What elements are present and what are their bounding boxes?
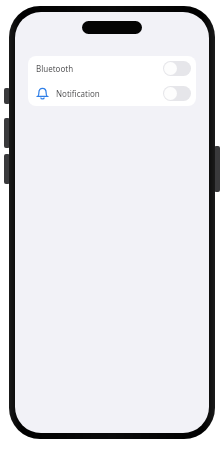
other: Notification (36, 87, 49, 100)
button[interactable]: Bluetooth (28, 56, 196, 81)
staticText: Bluetooth (36, 63, 74, 74)
staticText: Notification (56, 88, 100, 99)
button[interactable]: Toggle (163, 61, 191, 76)
button[interactable]: Notification (28, 81, 196, 106)
button[interactable]: Toggle (163, 86, 191, 101)
